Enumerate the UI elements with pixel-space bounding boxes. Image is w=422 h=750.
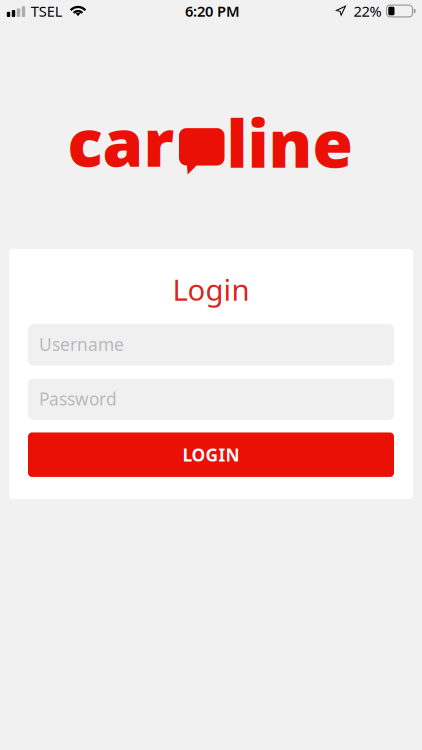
staticText: line (226, 99, 352, 186)
staticText: Password (39, 387, 117, 410)
staticText: LOGIN (182, 443, 239, 466)
staticText: Login (172, 270, 249, 309)
button[interactable]: LOGIN (28, 432, 394, 477)
staticText: car (67, 98, 174, 185)
staticText: 6:20 PM (185, 1, 240, 21)
staticText: Username (39, 333, 124, 356)
staticText: TSEL (31, 1, 63, 21)
staticText: 22% (354, 1, 382, 21)
